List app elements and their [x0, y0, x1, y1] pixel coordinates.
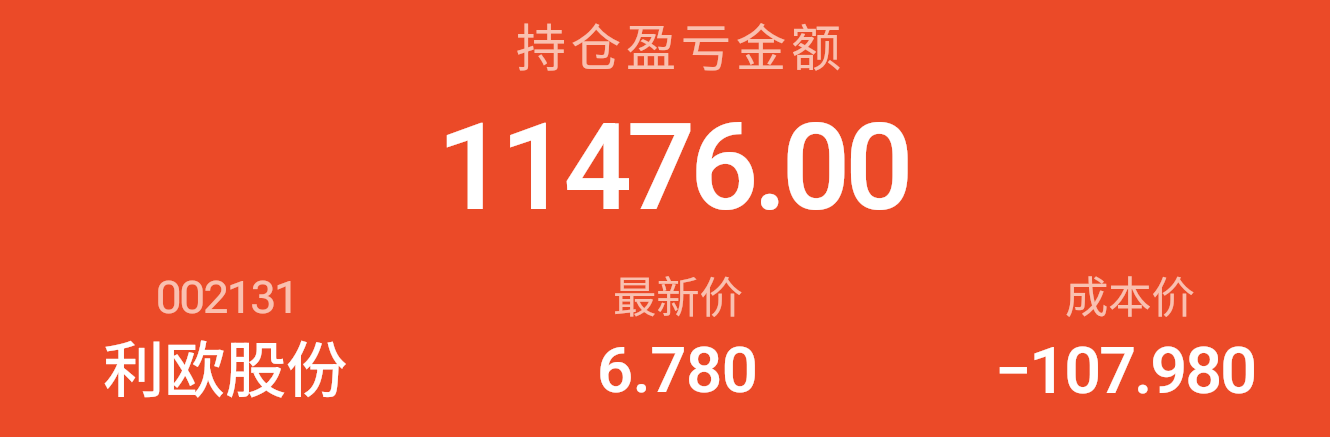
button[interactable]: 持仓盈亏金额 [0, 0, 1330, 437]
staticText: 11476.00 [437, 97, 909, 238]
staticText: 成本价 [1065, 263, 1195, 326]
staticText: 利欧股份 [103, 321, 348, 409]
staticText: 6.780 [597, 333, 758, 408]
staticText: −107.980 [995, 333, 1256, 409]
staticText: 持仓盈亏金额 [516, 8, 846, 80]
staticText: 最新价 [613, 263, 743, 326]
staticText: 002131 [156, 271, 298, 324]
